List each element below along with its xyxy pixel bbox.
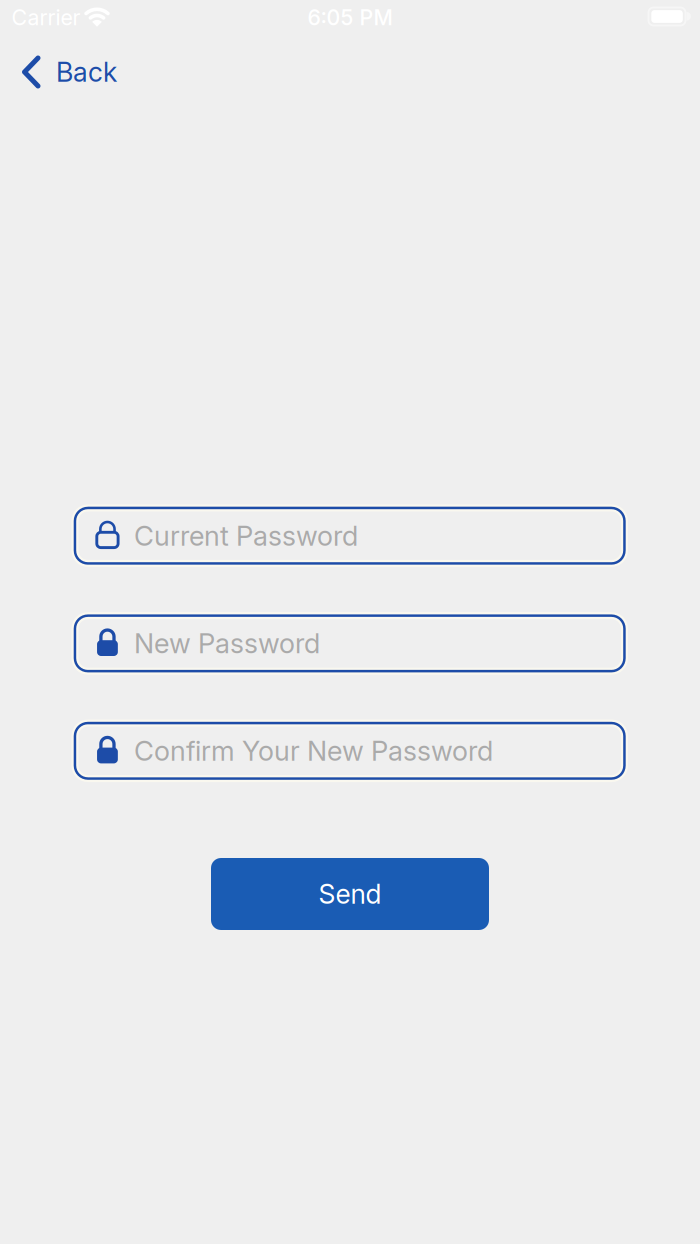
staticText: Back [56, 56, 117, 88]
staticText: Current Password [134, 519, 358, 552]
button[interactable]: New Password [75, 616, 624, 671]
button[interactable]: Current Password [75, 508, 624, 563]
button[interactable]: Confirm Your New Password [75, 723, 624, 778]
staticText: Send [318, 878, 381, 910]
staticText: Confirm Your New Password [134, 734, 493, 767]
button[interactable]: Send [211, 858, 489, 930]
button[interactable]: Back [0, 55, 129, 89]
staticText: 6:05 PM [307, 5, 392, 30]
staticText: Carrier [11, 5, 80, 30]
staticText: New Password [134, 627, 320, 660]
